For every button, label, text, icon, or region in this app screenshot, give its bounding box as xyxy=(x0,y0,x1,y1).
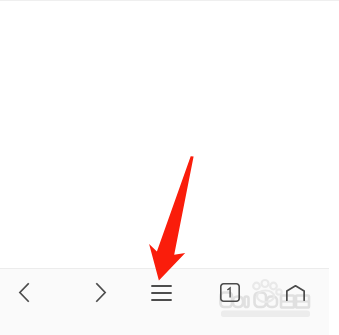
button[interactable]: Menu xyxy=(138,269,185,316)
button[interactable]: Back xyxy=(0,269,47,316)
button[interactable]: Tabs xyxy=(206,269,253,316)
button[interactable]: Forward xyxy=(77,269,124,316)
button[interactable]: Home xyxy=(272,269,319,316)
